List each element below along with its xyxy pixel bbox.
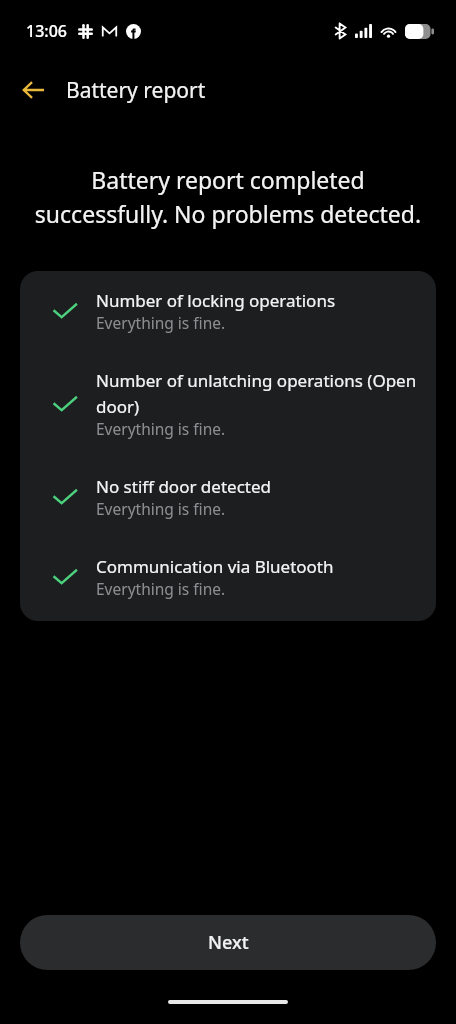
button[interactable]: Next xyxy=(20,915,436,970)
staticText: Battery report xyxy=(66,76,206,105)
staticText: Everything is fine. xyxy=(96,418,226,439)
button[interactable]: Back xyxy=(12,69,54,111)
staticText: Communication via Bluetooth xyxy=(96,555,334,578)
staticText: 13:06 xyxy=(26,20,67,42)
staticText: Everything is fine. xyxy=(96,578,226,599)
staticText: Everything is fine. xyxy=(96,498,226,519)
button[interactable]: Number of unlatching operations (Open do… xyxy=(20,363,436,445)
button[interactable]: Communication via Bluetooth xyxy=(20,549,436,605)
staticText: Number of locking operations xyxy=(96,289,336,312)
staticText: Everything is fine. xyxy=(96,312,226,333)
button[interactable]: Number of locking operations xyxy=(20,283,436,339)
staticText: No stiff door detected xyxy=(96,475,271,498)
staticText: Number of unlatching operations (Open do… xyxy=(96,369,418,418)
button[interactable]: No stiff door detected xyxy=(20,469,436,525)
staticText: Battery report completed successfully. N… xyxy=(34,164,422,229)
staticText: Next xyxy=(208,930,249,955)
